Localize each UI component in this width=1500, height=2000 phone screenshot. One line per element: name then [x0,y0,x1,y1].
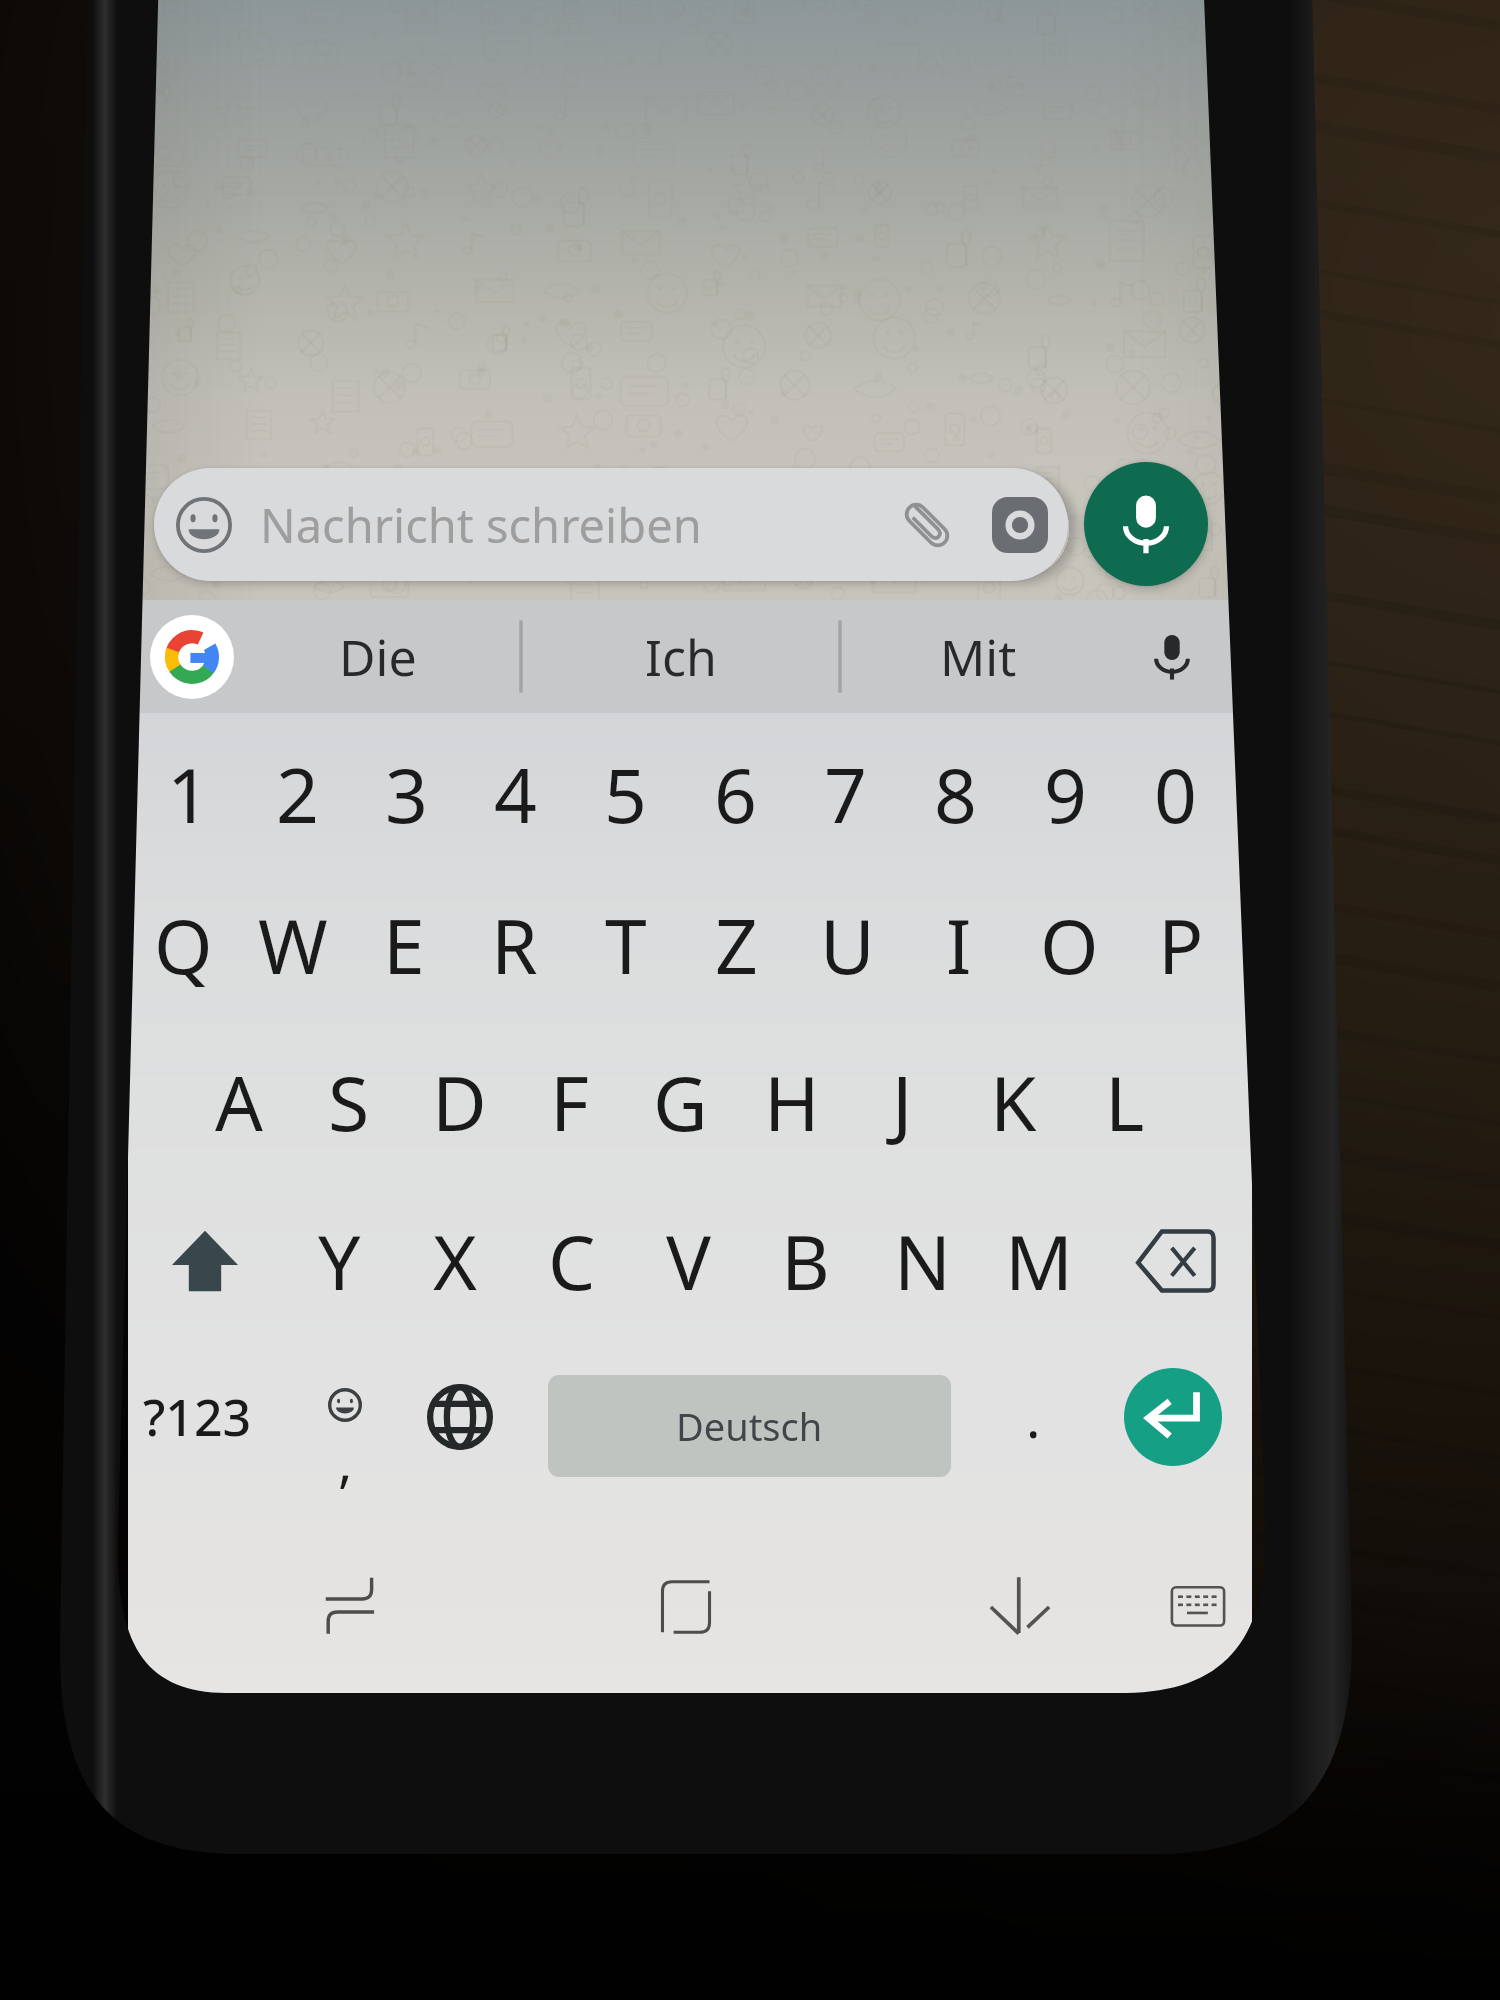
staticText: 2 [276,743,319,845]
button[interactable]: ?123 [128,1339,266,1494]
staticText: F [550,1051,589,1153]
button[interactable]: Voice input [1116,600,1252,713]
button[interactable]: Y [281,1182,397,1339]
button[interactable]: Home [519,1518,853,1695]
staticText: . [1026,1380,1041,1454]
button[interactable]: E [348,869,459,1021]
button[interactable]: Record voice message [1084,462,1208,586]
staticText: D [432,1051,487,1153]
button[interactable]: 4 [461,718,570,869]
button[interactable]: Deutsch [548,1375,951,1477]
staticText: Die [339,623,417,691]
staticText: X [433,1210,477,1312]
staticText: P [1158,894,1204,996]
staticText: 6 [714,743,757,845]
staticText: M [1005,1210,1074,1312]
button[interactable]: G [625,1021,736,1182]
button[interactable]: Z [681,869,792,1021]
button[interactable]: Enter [1115,1339,1231,1494]
staticText: H [764,1051,820,1153]
staticText: J [892,1051,913,1153]
button[interactable]: I [903,869,1014,1021]
staticText: N [894,1210,952,1312]
staticText: Ich [645,623,717,691]
staticText: G [653,1051,708,1153]
button[interactable]: R [459,869,570,1021]
staticText: E [383,894,425,996]
staticText: Q [154,894,213,996]
staticText: Mit [940,623,1017,691]
button[interactable]: T [570,869,681,1021]
button[interactable]: Hide keyboard [853,1518,1187,1695]
button[interactable]: 3 [352,718,461,869]
staticText: 8 [934,743,977,845]
staticText: W [258,894,328,996]
staticText: Y [318,1210,361,1312]
button[interactable]: Emoji [154,468,1068,581]
button[interactable]: Ich [521,600,840,713]
staticText: 1 [167,743,210,845]
staticText: , [338,1424,353,1498]
staticText: L [1105,1051,1145,1153]
button[interactable]: M [981,1182,1098,1339]
staticText: R [491,894,538,996]
button[interactable]: U [792,869,903,1021]
button[interactable]: Emoji [176,497,232,553]
button[interactable]: V [630,1182,747,1339]
button[interactable]: A [184,1021,294,1182]
button[interactable]: B [747,1182,864,1339]
staticText: 9 [1044,743,1087,845]
staticText: ?123 [143,1383,252,1451]
staticText: Nachricht schreiben [260,493,702,557]
button[interactable]: Comma and emoji [266,1339,424,1494]
staticText: 0 [1154,743,1197,845]
button[interactable]: N [864,1182,981,1339]
button[interactable]: S [294,1021,404,1182]
button[interactable]: 1 [134,718,243,869]
button[interactable]: H [736,1021,847,1182]
button[interactable]: K [958,1021,1069,1182]
button[interactable]: F [514,1021,625,1182]
button[interactable]: 7 [790,718,900,869]
staticText: I [946,894,972,996]
button[interactable]: Back [186,1518,519,1695]
staticText: C [548,1210,596,1312]
button[interactable]: W [238,869,348,1021]
staticText: Z [715,894,758,996]
button[interactable]: Camera [992,497,1048,553]
button[interactable]: L [1069,1021,1180,1182]
button[interactable]: D [404,1021,514,1182]
button[interactable]: Change keyboard language [424,1339,496,1494]
button[interactable]: 9 [1010,718,1120,869]
staticText: V [666,1210,712,1312]
button[interactable]: Google Assistant [150,615,234,699]
staticText: A [215,1051,263,1153]
staticText: 3 [385,743,428,845]
staticText: K [990,1051,1037,1153]
staticText: 7 [824,743,867,845]
staticText: T [605,894,647,996]
button[interactable]: Backspace [1098,1182,1252,1339]
button[interactable]: Die [234,600,521,713]
button[interactable]: Shift [128,1182,281,1339]
button[interactable]: X [397,1182,513,1339]
staticText: Deutsch [676,1400,823,1452]
button[interactable]: C [513,1182,630,1339]
staticText: U [820,894,875,996]
button[interactable]: 0 [1120,718,1230,869]
button[interactable]: . [951,1339,1115,1494]
staticText: O [1040,894,1099,996]
button[interactable]: 6 [680,718,790,869]
button[interactable]: P [1125,869,1236,1021]
button[interactable]: Attach [896,494,958,556]
staticText: 5 [604,743,647,845]
button[interactable]: 2 [243,718,352,869]
button[interactable]: J [847,1021,958,1182]
staticText: B [781,1210,830,1312]
button[interactable]: Mit [840,600,1116,713]
button[interactable]: 8 [900,718,1010,869]
button[interactable]: Q [128,869,238,1021]
button[interactable]: O [1014,869,1125,1021]
button[interactable]: 5 [570,718,680,869]
button[interactable]: Switch keyboard [1187,1518,1252,1695]
